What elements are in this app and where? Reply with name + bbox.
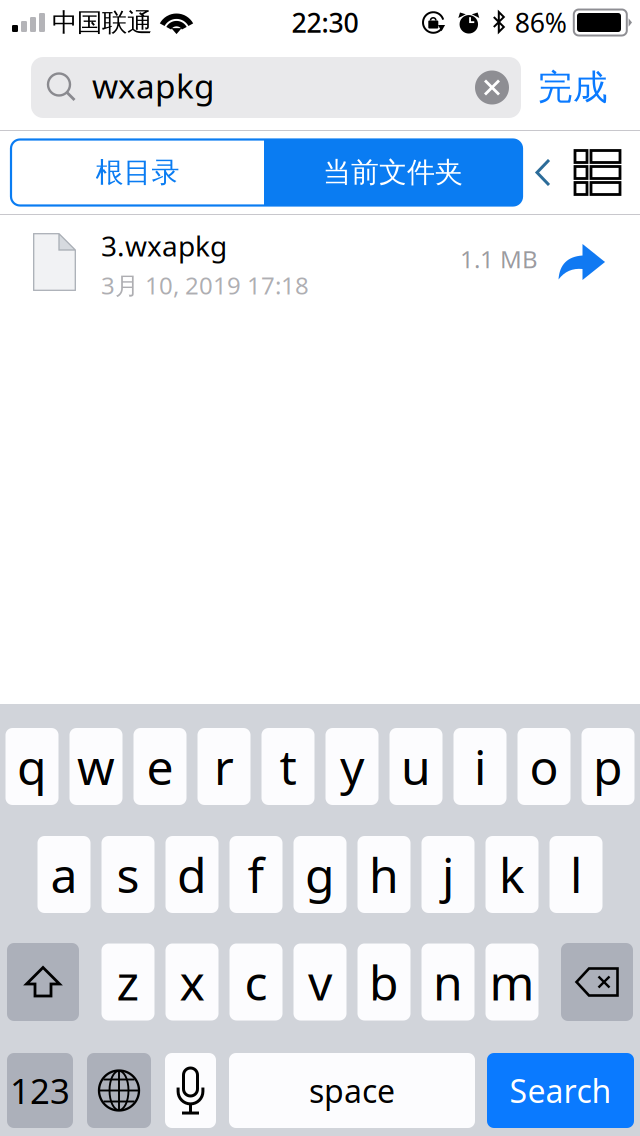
staticText: 22:30 — [291, 5, 358, 40]
staticText: 完成 — [538, 66, 608, 109]
button[interactable]: q — [5, 728, 58, 805]
button[interactable]: List view — [575, 150, 620, 194]
staticText: c — [244, 950, 267, 1014]
button[interactable]: b — [357, 943, 410, 1020]
staticText: 86% — [515, 5, 567, 40]
staticText: y — [340, 735, 364, 798]
button[interactable]: m — [485, 943, 538, 1020]
staticText: m — [489, 950, 534, 1014]
button[interactable]: u — [389, 728, 442, 805]
staticText: Search — [509, 1069, 611, 1112]
button[interactable]: Next keyboard — [87, 1053, 151, 1128]
staticText: x — [179, 950, 204, 1014]
staticText: z — [116, 950, 139, 1014]
button[interactable]: Clear text — [475, 57, 521, 117]
staticText: 1.1 MB — [460, 243, 538, 275]
button[interactable]: c — [229, 943, 282, 1020]
staticText: u — [401, 735, 431, 798]
button[interactable]: Back — [526, 150, 560, 194]
staticText: w — [77, 735, 115, 798]
staticText: wxapkg — [92, 63, 215, 108]
button[interactable]: v — [293, 943, 346, 1020]
staticText: p — [593, 735, 623, 798]
button[interactable]: Dictation — [165, 1053, 216, 1128]
button[interactable]: 3.wxapkg — [0, 215, 640, 309]
button[interactable]: w — [69, 728, 122, 805]
button[interactable]: j — [421, 836, 474, 913]
staticText: space — [309, 1069, 395, 1112]
staticText: 根目录 — [95, 155, 179, 190]
staticText: n — [433, 950, 463, 1014]
staticText: j — [442, 843, 454, 906]
button[interactable]: Search — [487, 1053, 634, 1128]
staticText: s — [116, 843, 139, 906]
button[interactable]: Shift — [7, 943, 79, 1021]
staticText: 3月 10, 2019 17:18 — [101, 269, 309, 301]
staticText: v — [308, 950, 332, 1014]
button[interactable]: 完成 — [521, 57, 625, 118]
button[interactable]: a — [37, 836, 90, 913]
button[interactable]: x — [165, 943, 218, 1020]
button[interactable]: s — [101, 836, 154, 913]
staticText: 123 — [10, 1067, 70, 1113]
button[interactable]: d — [165, 836, 218, 913]
button[interactable]: h — [357, 836, 410, 913]
staticText: k — [499, 843, 525, 906]
staticText: e — [146, 735, 173, 798]
button[interactable]: 123 — [7, 1053, 73, 1128]
button[interactable]: Delete — [561, 943, 633, 1021]
button[interactable]: z — [101, 943, 154, 1020]
staticText: l — [570, 843, 582, 906]
staticText: d — [177, 843, 207, 906]
button[interactable]: o — [517, 728, 570, 805]
staticText: t — [279, 735, 296, 798]
button[interactable]: g — [293, 836, 346, 913]
button[interactable]: 当前文件夹 — [264, 139, 522, 205]
staticText: i — [474, 735, 486, 798]
staticText: f — [247, 843, 264, 906]
button[interactable]: f — [229, 836, 282, 913]
staticText: b — [369, 950, 399, 1014]
staticText: 中国联通 — [52, 7, 152, 38]
button[interactable]: 根目录 — [11, 139, 264, 205]
button[interactable]: k — [485, 836, 538, 913]
button[interactable]: i — [453, 728, 506, 805]
button[interactable]: p — [581, 728, 634, 805]
button[interactable]: t — [261, 728, 314, 805]
button[interactable]: space — [229, 1053, 475, 1128]
staticText: h — [369, 843, 399, 906]
staticText: q — [17, 735, 47, 798]
staticText: a — [50, 843, 77, 906]
button[interactable]: e — [133, 728, 186, 805]
staticText: 3.wxapkg — [101, 227, 227, 264]
button[interactable]: r — [197, 728, 250, 805]
button[interactable]: n — [421, 943, 474, 1020]
staticText: r — [214, 735, 234, 798]
staticText: o — [529, 735, 558, 798]
staticText: 当前文件夹 — [323, 155, 463, 190]
button[interactable]: y — [325, 728, 378, 805]
staticText: g — [305, 843, 335, 906]
button[interactable]: l — [549, 836, 602, 913]
